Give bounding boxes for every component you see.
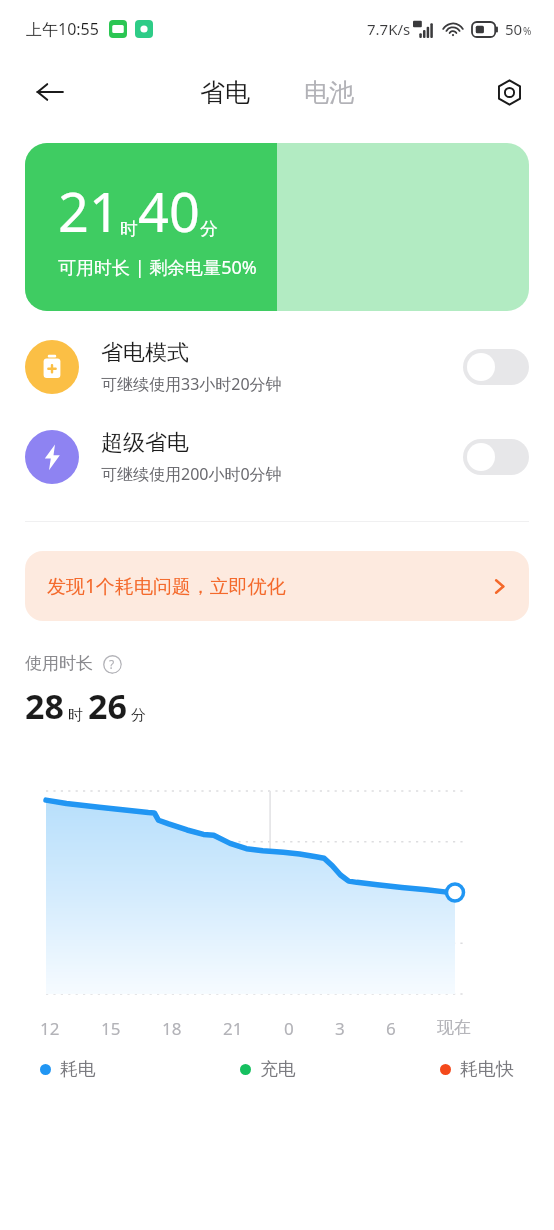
button[interactable]: 超级省电 [0,424,554,490]
staticText: 发现1个耗电问题，立即优化 [47,573,490,599]
button[interactable]: Settings [486,69,532,115]
button[interactable]: 省电 [192,72,258,113]
staticText: 50 [505,19,523,39]
button[interactable]: Back [26,68,74,116]
button[interactable]: 21 [25,143,529,311]
button[interactable]: Help [102,654,122,674]
staticText: 3 [335,1017,345,1040]
staticText: 28 [25,683,64,729]
staticText: 6 [386,1017,396,1040]
staticText: 18 [162,1017,182,1040]
staticText: 电池 [304,77,354,108]
staticText: 7.7K/s [367,19,411,39]
staticText: 时 [68,706,83,725]
staticText: 40 [138,174,200,248]
staticText: 耗电快 [460,1058,514,1081]
staticText: 可用时长 | 剩余电量50% [58,255,257,280]
staticText: 时 [120,218,138,241]
staticText: 可继续使用200小时0分钟 [101,463,282,485]
staticText: 省电模式 [101,339,189,367]
button[interactable]: 耗电快 [440,1058,514,1081]
button[interactable]: 充电 [240,1058,296,1081]
staticText: 0 [284,1017,294,1040]
staticText: 现在 [437,1017,471,1038]
staticText: % [523,24,532,38]
staticText: 使用时长 [25,653,93,674]
staticText: 上午10:55 [26,18,99,40]
staticText: 耗电 [60,1058,96,1081]
staticText: 21 [223,1017,243,1040]
staticText: 15 [101,1017,121,1040]
button[interactable]: 发现1个耗电问题，立即优化 [25,551,529,621]
staticText: 26 [88,683,127,729]
button[interactable]: Toggle 超级省电 [463,439,529,475]
staticText: 省电 [200,77,250,108]
staticText: 21 [58,174,120,248]
staticText: 超级省电 [101,429,189,457]
button[interactable]: Toggle 省电模式 [463,349,529,385]
button[interactable]: 耗电 [40,1058,96,1081]
staticText: 分 [200,218,218,241]
staticText: ? [109,656,115,672]
staticText: 充电 [260,1058,296,1081]
staticText: 12 [40,1017,60,1040]
button[interactable]: 省电模式 [0,334,554,400]
staticText: 分 [131,706,146,725]
button[interactable]: 电池 [296,72,362,113]
staticText: 可继续使用33小时20分钟 [101,373,282,395]
